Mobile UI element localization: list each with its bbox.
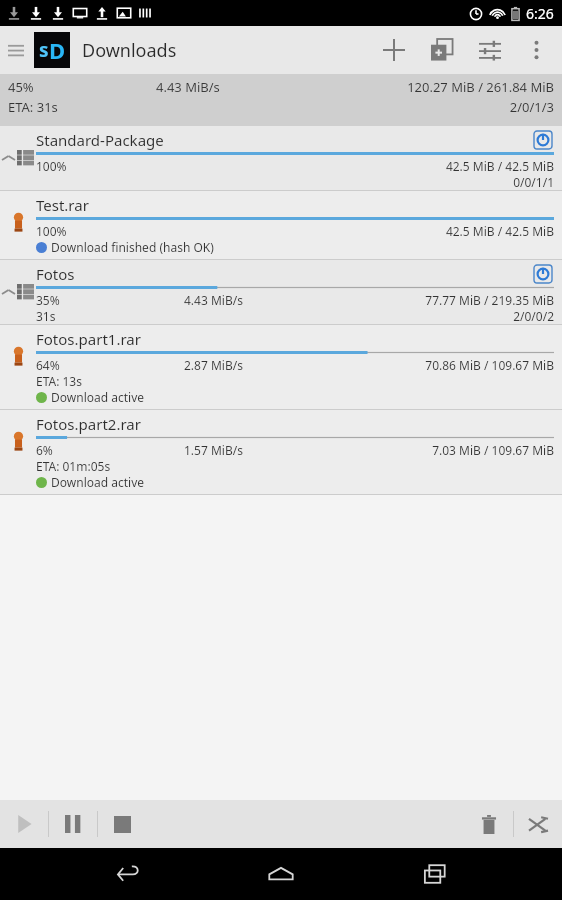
staticText: 42.5 MiB / 42.5 MiB [347, 223, 554, 239]
staticText: 70.86 MiB / 109.67 MiB [347, 357, 554, 373]
staticText: s [39, 37, 49, 63]
button[interactable]: Add batch [418, 26, 466, 74]
button[interactable]: Navigation drawer [4, 38, 28, 62]
staticText: 77.77 MiB / 219.35 MiB [347, 292, 554, 308]
staticText: 64% [36, 357, 184, 373]
button[interactable]: Home [255, 848, 307, 900]
button[interactable]: Shuffle [514, 800, 562, 848]
button[interactable]: Stop [98, 800, 146, 848]
staticText: 42.5 MiB / 42.5 MiB [347, 158, 554, 174]
staticText: 2.87 MiB/s [184, 357, 347, 373]
staticText: 7.03 MiB / 109.67 MiB [347, 442, 554, 458]
button[interactable]: Pause [49, 800, 97, 848]
staticText: 100% [36, 158, 184, 174]
staticText: 45% [8, 78, 156, 96]
staticText: 2/0/0/2 [295, 308, 554, 324]
button[interactable]: Fotos [0, 260, 562, 325]
staticText: Test.rar [36, 195, 89, 215]
staticText: 6:26 [526, 4, 554, 23]
button[interactable]: Delete [465, 800, 513, 848]
button[interactable]: Filter settings [466, 26, 514, 74]
staticText: Download finished (hash OK) [51, 239, 214, 255]
staticText: Downloads [82, 38, 177, 63]
button[interactable]: Standard-Package [0, 126, 562, 191]
staticText: 2/0/1/3 [281, 98, 554, 116]
staticText: ETA: 01m:05s [36, 458, 111, 474]
button[interactable]: Add download [370, 26, 418, 74]
staticText: Fotos [36, 264, 532, 284]
button[interactable]: Recent apps [409, 848, 461, 900]
staticText: 1.57 MiB/s [184, 442, 347, 458]
staticText: ETA: 31s [8, 98, 281, 116]
staticText: 6% [36, 442, 184, 458]
staticText: Download active [51, 389, 145, 405]
button[interactable]: Fotos.part2.rar [0, 410, 562, 495]
staticText: 35% [36, 292, 184, 308]
staticText: Fotos.part2.rar [36, 414, 141, 434]
staticText: 4.43 MiB/s [184, 292, 347, 308]
staticText: 100% [36, 223, 184, 239]
button[interactable]: Fotos.part1.rar [0, 325, 562, 410]
staticText: ETA: 13s [36, 373, 82, 389]
button[interactable]: Group options [532, 129, 554, 151]
staticText: Download active [51, 474, 145, 490]
button[interactable]: Test.rar [0, 191, 562, 260]
button[interactable]: More options [514, 28, 558, 72]
staticText: 120.27 MiB / 261.84 MiB [333, 78, 554, 96]
staticText: Standard-Package [36, 130, 532, 150]
staticText: 0/0/1/1 [295, 174, 554, 190]
staticText: Fotos.part1.rar [36, 329, 141, 349]
button[interactable]: Group options [532, 263, 554, 285]
staticText: 31s [36, 308, 295, 324]
button[interactable]: Back [102, 848, 154, 900]
staticText: D [49, 35, 66, 65]
staticText: 4.43 MiB/s [156, 78, 333, 96]
button[interactable]: Start [0, 800, 48, 848]
